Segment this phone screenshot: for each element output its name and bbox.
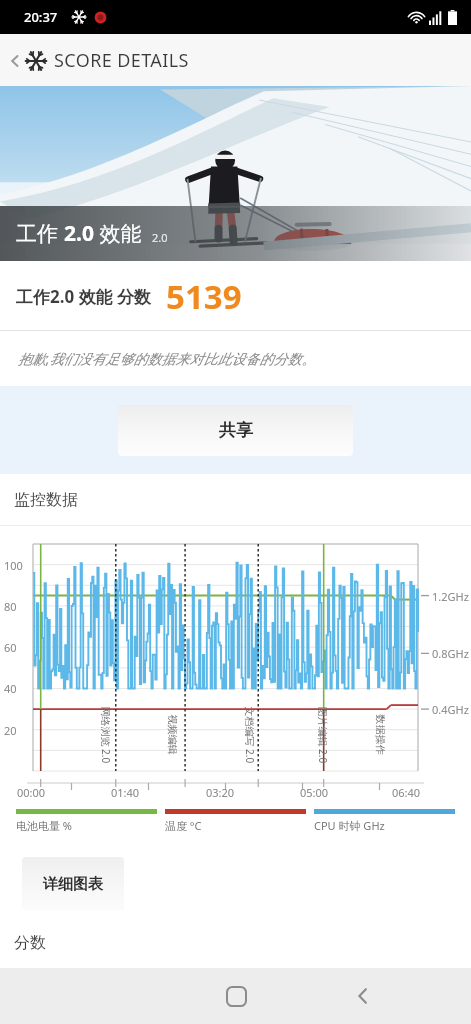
staticText: 共享 <box>219 420 253 441</box>
other: Back <box>8 54 22 68</box>
staticText: 图片编辑 2.0 <box>315 706 329 763</box>
staticText: 1.2GHz <box>432 589 469 604</box>
staticText: 100 <box>4 558 23 573</box>
staticText: 0.8GHz <box>432 646 469 661</box>
button[interactable]: Home <box>210 970 262 1022</box>
staticText: 详细图表 <box>43 875 103 894</box>
staticText: 60 <box>4 640 17 655</box>
staticText: 监控数据 <box>14 490 78 510</box>
staticText: 效能 <box>94 219 142 248</box>
button[interactable]: Back <box>0 42 205 79</box>
staticText: 5139 <box>166 274 242 319</box>
staticText: 01:40 <box>111 785 140 800</box>
staticText: 数据操作 <box>373 714 386 754</box>
staticText: 40 <box>4 681 17 696</box>
staticText: 03:20 <box>206 785 235 800</box>
staticText: 分数 <box>14 933 46 953</box>
staticText: 电池电量 % <box>16 818 73 833</box>
staticText: 06:40 <box>392 785 421 800</box>
staticText: 80 <box>4 599 17 614</box>
button[interactable]: 详细图表 <box>22 857 124 911</box>
staticText: 0.4GHz <box>432 702 469 717</box>
staticText: 工作2.0 效能 分数 <box>16 285 152 308</box>
staticText: 00:00 <box>17 785 46 800</box>
staticText: 20:37 <box>24 8 58 26</box>
staticText: 2.0 <box>152 230 168 245</box>
staticText: 05:00 <box>300 785 329 800</box>
staticText: 视频编辑 <box>165 714 178 754</box>
staticText: 温度 °C <box>165 818 202 833</box>
staticText: 20 <box>4 723 17 738</box>
staticText: 网络浏览 2.0 <box>98 706 112 763</box>
staticText: 2.0 <box>64 219 94 248</box>
staticText: 抱歉,我们没有足够的数据来对比此设备的分数。 <box>18 349 316 368</box>
button[interactable]: Back <box>337 970 389 1022</box>
button[interactable]: 共享 <box>118 405 353 456</box>
staticText: SCORE DETAILS <box>54 48 189 73</box>
staticText: CPU 时钟 GHz <box>314 818 385 833</box>
staticText: 文档编写 2.0 <box>242 706 256 763</box>
staticText: 工作 <box>16 219 64 248</box>
